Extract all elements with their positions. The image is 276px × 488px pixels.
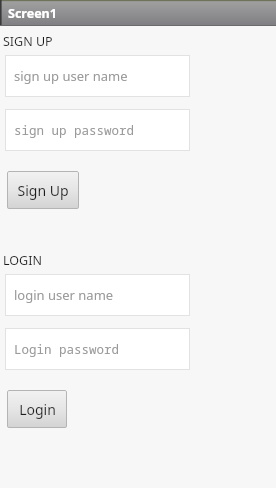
staticText: LOGIN — [3, 252, 42, 269]
staticText: Login — [19, 400, 56, 419]
staticText: sign up user name — [14, 67, 128, 85]
staticText: Login password — [14, 341, 120, 358]
staticText: SIGN UP — [3, 33, 53, 50]
button[interactable]: sign up user name — [5, 55, 190, 97]
staticText: Screen1 — [8, 5, 57, 22]
button[interactable]: sign up password — [5, 109, 190, 151]
button[interactable]: Sign Up — [7, 171, 79, 209]
button[interactable]: Login — [7, 390, 67, 428]
staticText: sign up password — [14, 122, 135, 139]
staticText: login user name — [14, 286, 114, 304]
staticText: Sign Up — [17, 181, 69, 200]
button[interactable]: Login password — [5, 328, 190, 370]
button[interactable]: login user name — [5, 274, 190, 316]
